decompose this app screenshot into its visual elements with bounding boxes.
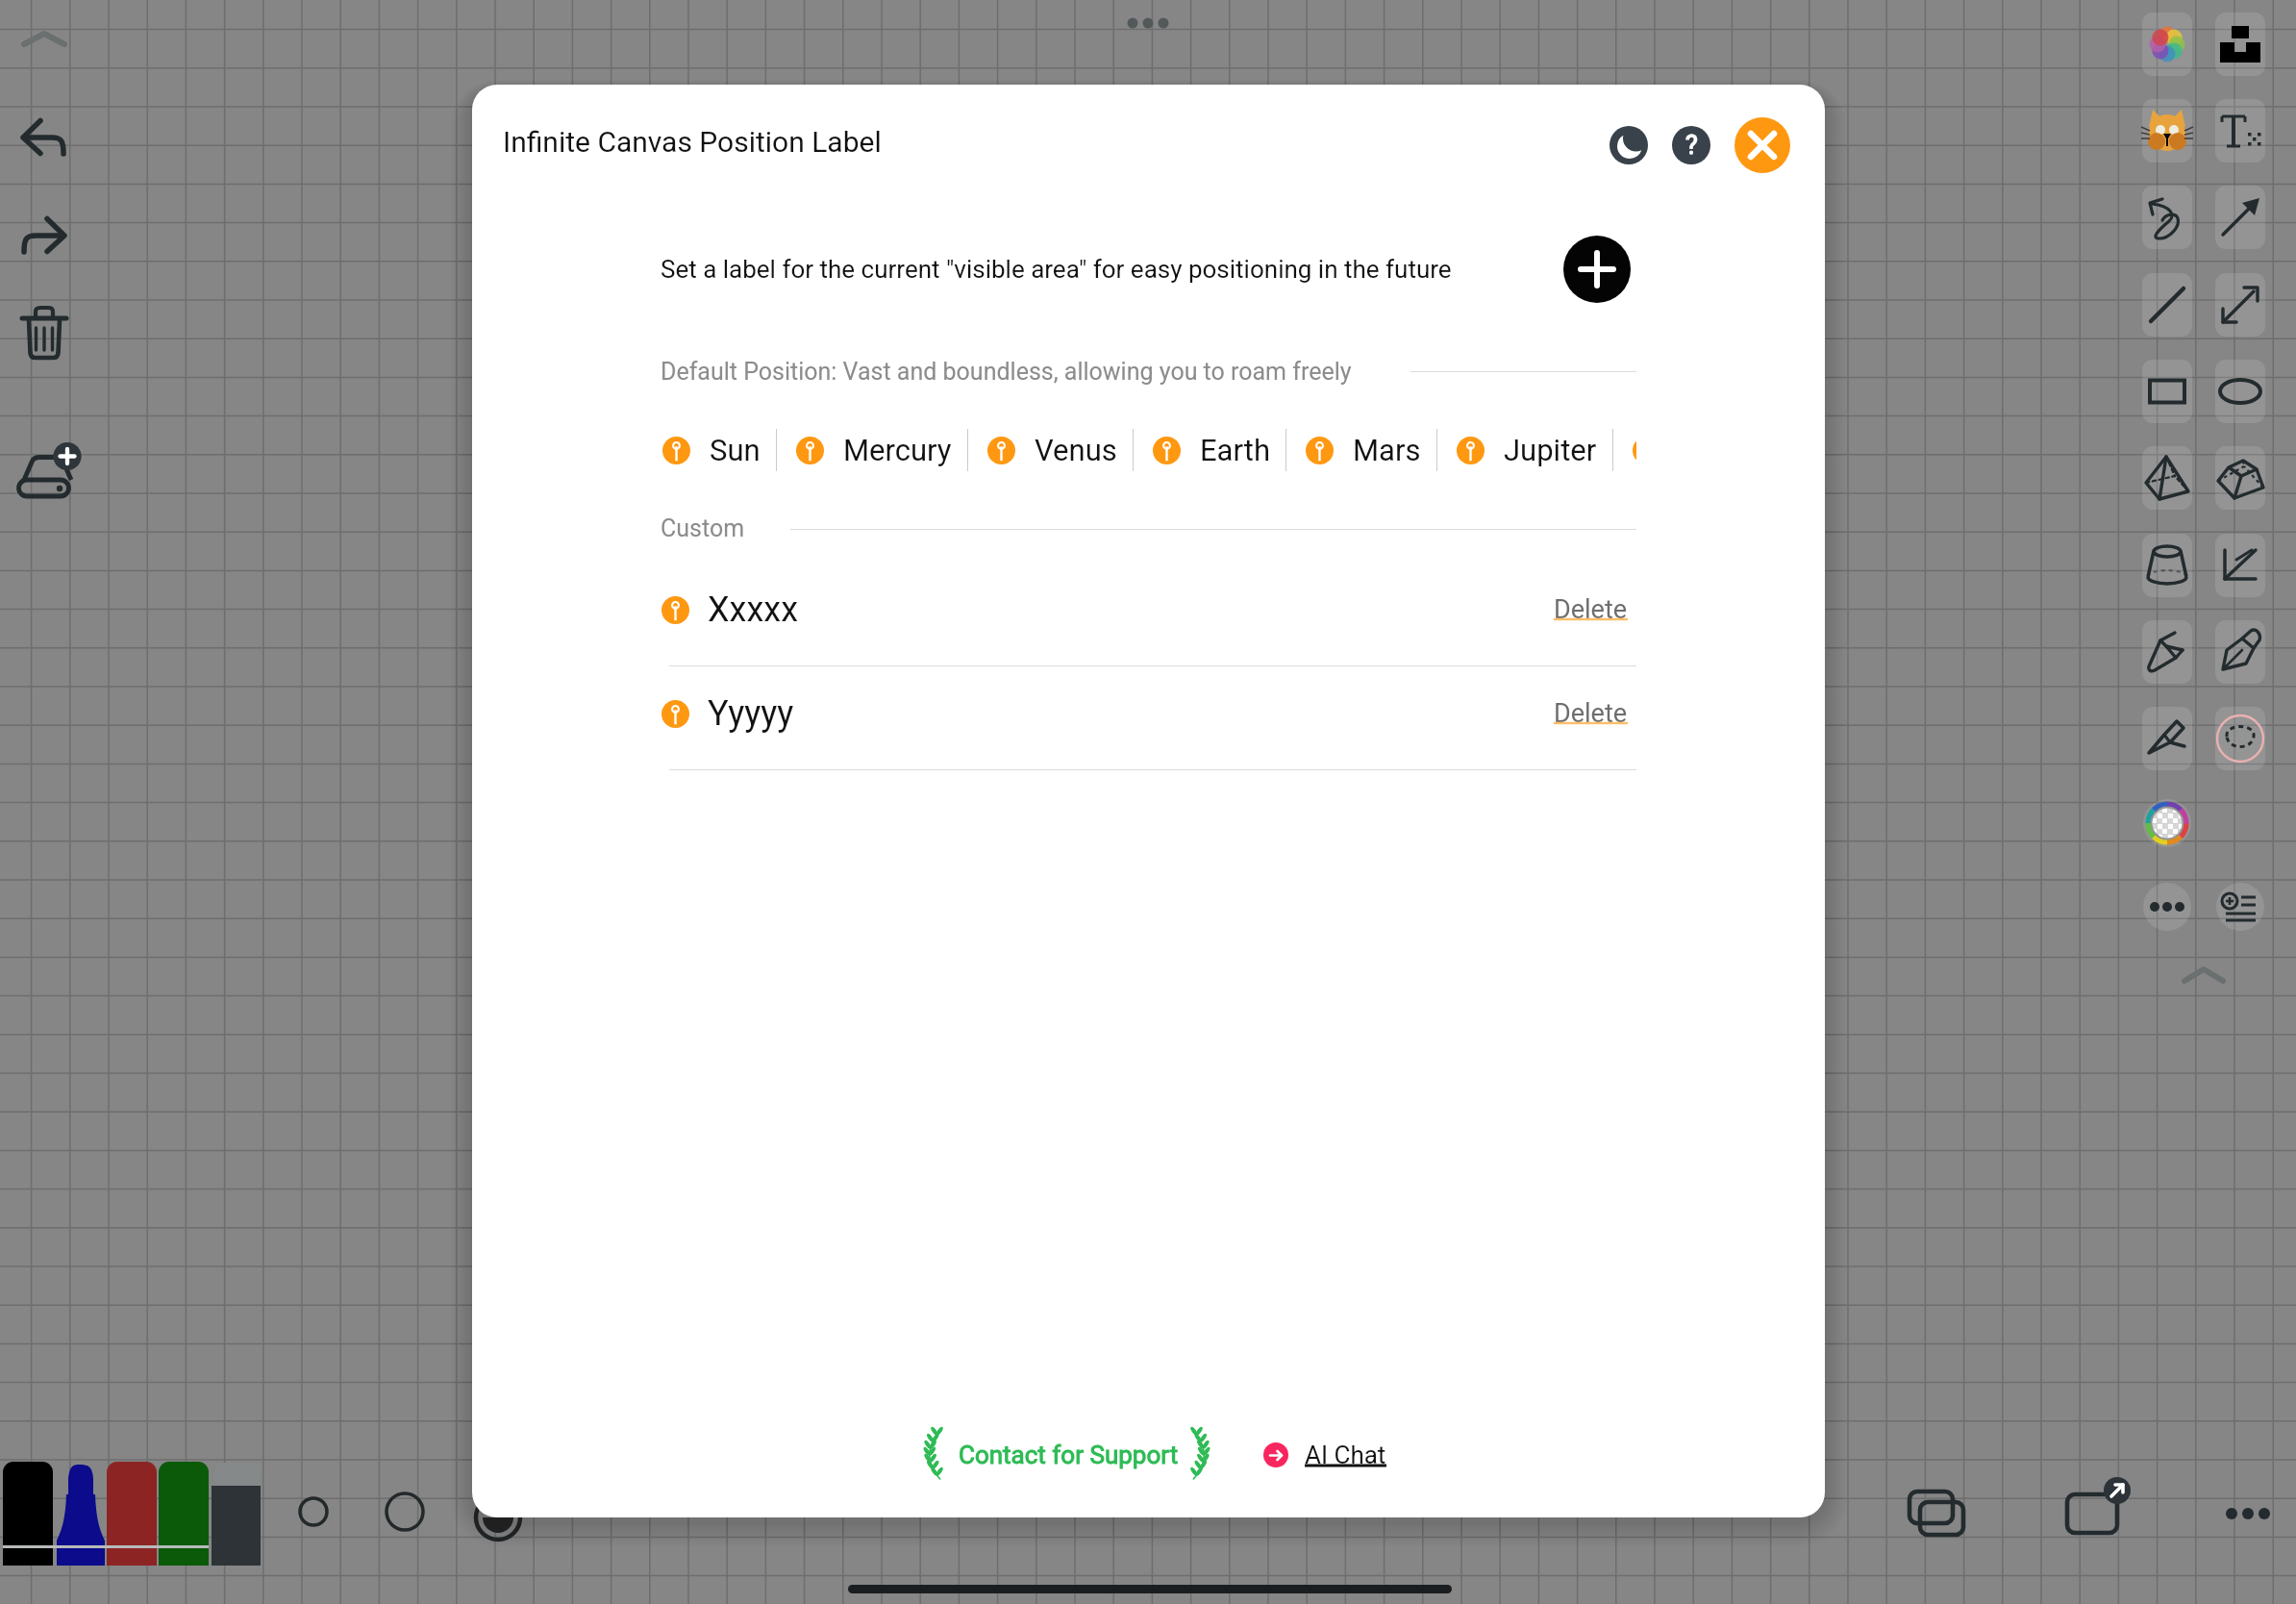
button[interactable]: Text [2215,99,2265,163]
staticText: Mars [1353,433,1421,467]
button[interactable]: Delete [1554,698,1628,729]
button[interactable]: Add label [1563,236,1631,303]
button[interactable]: Infinite Canvas Position Label [503,125,882,159]
button[interactable]: Stamp [2215,13,2265,76]
button[interactable]: Jupiter [1437,425,1612,475]
staticText: Contact for Support [959,1441,1179,1469]
staticText: Default Position: Vast and boundless, al… [661,358,1352,386]
button[interactable]: Mercury [777,425,967,475]
staticText: Xxxxx [708,589,799,630]
button[interactable]: Brush [2142,707,2192,770]
button[interactable]: Dark mode [1610,126,1648,164]
button[interactable]: Red pen [107,1462,157,1566]
button[interactable]: Colour [2143,799,2191,847]
staticText: Delete [1554,698,1628,729]
button[interactable]: Duplicate [1904,1486,1971,1545]
button[interactable]: Highlighter [2142,620,2192,684]
button[interactable]: Export [2061,1479,2129,1539]
staticText: Custom [661,514,745,542]
button[interactable]: Delete [1554,594,1628,625]
button[interactable]: More options [2143,883,2191,931]
button[interactable]: Xxxxx [661,578,1628,641]
button[interactable]: Selection [2215,707,2265,770]
button[interactable]: Blue marker [56,1462,106,1566]
button[interactable]: Line [2142,273,2192,337]
staticText: Earth [1200,433,1270,467]
staticText: Sun [710,433,761,467]
button[interactable]: Double arrow [2215,273,2265,337]
button[interactable]: Cylinder [2142,534,2192,597]
button[interactable]: Sun [643,425,776,475]
button[interactable]: Rectangle [2142,360,2192,423]
staticText: Mercury [843,433,952,467]
button[interactable]: Arrow [2215,186,2265,249]
staticText: Set a label for the current "visible are… [661,255,1452,284]
button[interactable]: AI Chat [1263,1428,1386,1482]
button[interactable]: Contact for Support [916,1428,1217,1482]
button[interactable]: Eraser [212,1462,262,1566]
button[interactable]: More [2219,1492,2279,1535]
button[interactable]: Ellipse [2215,360,2265,423]
button[interactable]: Earth [1134,425,1285,475]
staticText: Infinite Canvas Position Label [503,125,882,159]
button[interactable]: Help [1672,126,1710,164]
staticText: ? [1685,130,1698,161]
staticText: AI Chat [1305,1441,1386,1469]
button[interactable]: Black pen [3,1462,53,1566]
button[interactable]: Collapse tools [2179,956,2229,990]
button[interactable]: Venus [968,425,1133,475]
button[interactable]: Angle [2215,534,2265,597]
button[interactable]: Pen [2215,620,2265,684]
staticText: Delete [1554,594,1628,625]
button[interactable]: Prism [2215,446,2265,510]
button[interactable]: Undo [8,109,85,168]
button[interactable]: Yyyyy [661,682,1628,745]
button[interactable]: Pyramid [2142,446,2192,510]
staticText: Jupiter [1504,433,1597,467]
button[interactable]: Add page [13,431,81,504]
button[interactable]: Green pen [159,1462,209,1566]
button[interactable]: Delete [17,303,73,376]
button[interactable]: Small brush size [296,1494,331,1529]
button[interactable]: Collapse toolbar [17,21,71,60]
button[interactable]: Add note [2216,883,2264,931]
staticText: Yyyyy [708,693,794,734]
button[interactable]: Photos [2142,13,2192,76]
button[interactable]: Close [1734,117,1790,173]
button[interactable]: Saturn [1613,425,1636,475]
button[interactable]: Lasso select [2142,186,2192,249]
button[interactable]: Large brush size [383,1490,427,1534]
button[interactable]: Mars [1286,425,1436,475]
staticText: Venus [1035,433,1117,467]
button[interactable]: Sticker [2142,99,2192,163]
button[interactable]: Redo [8,207,85,266]
